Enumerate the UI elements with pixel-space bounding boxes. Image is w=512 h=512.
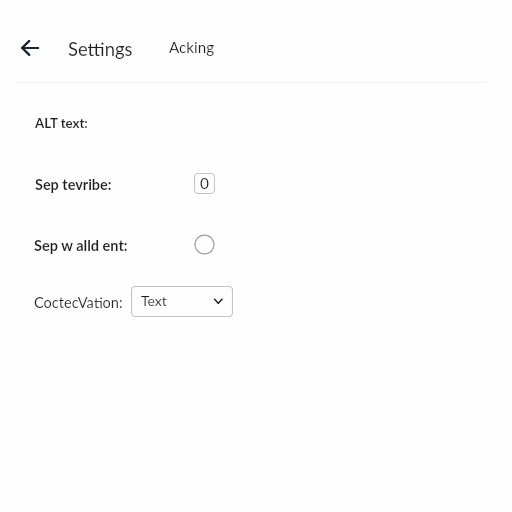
button[interactable]: Text <box>131 286 233 317</box>
button[interactable]: Back <box>14 32 46 64</box>
staticText: ALT text: <box>35 115 88 131</box>
button[interactable]: Acking <box>163 34 221 62</box>
staticText: Acking <box>169 38 215 56</box>
button[interactable]: 0 <box>194 173 215 194</box>
staticText: CoctecVation: <box>34 294 123 311</box>
staticText: Text <box>141 292 167 309</box>
staticText: Sep tevribe: <box>35 176 112 193</box>
button[interactable]: Settings <box>62 33 140 63</box>
button[interactable]: Toggle option <box>194 234 215 255</box>
staticText: Sep w alld ent: <box>34 237 128 254</box>
staticText: 0 <box>200 174 209 192</box>
staticText: Settings <box>68 38 133 60</box>
